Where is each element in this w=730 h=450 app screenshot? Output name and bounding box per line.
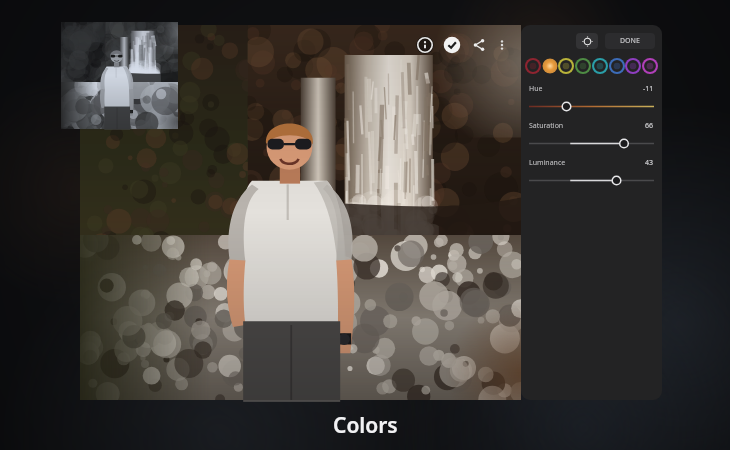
button[interactable]: Info [416, 36, 434, 54]
staticText: 66 [645, 121, 654, 131]
button[interactable]: Share [470, 36, 488, 54]
staticText: -11 [643, 84, 654, 94]
button[interactable]: Saturation [521, 121, 662, 158]
button[interactable]: Color channel 2 [542, 58, 558, 74]
button[interactable]: Color channel 5 [592, 58, 608, 74]
button[interactable]: Luminance [521, 158, 662, 195]
staticText: Colors [333, 411, 398, 440]
button[interactable]: Color channel 3 [558, 58, 574, 74]
staticText: Saturation [529, 121, 564, 131]
staticText: Hue [529, 84, 543, 94]
button[interactable]: More options [493, 36, 511, 54]
staticText: DONE [620, 36, 640, 46]
button[interactable]: Hue [521, 84, 662, 121]
button[interactable]: Apply [443, 36, 461, 54]
button[interactable]: Color channel 7 [625, 58, 641, 74]
button[interactable]: Color channel 8 [642, 58, 658, 74]
staticText: 43 [645, 158, 654, 168]
staticText: Luminance [529, 158, 566, 168]
button[interactable]: Color channel 4 [575, 58, 591, 74]
button[interactable]: Color channel 6 [609, 58, 625, 74]
button[interactable]: DONE [605, 33, 655, 49]
button[interactable]: Color channel 1 [525, 58, 541, 74]
button[interactable]: Target color picker [576, 33, 598, 49]
